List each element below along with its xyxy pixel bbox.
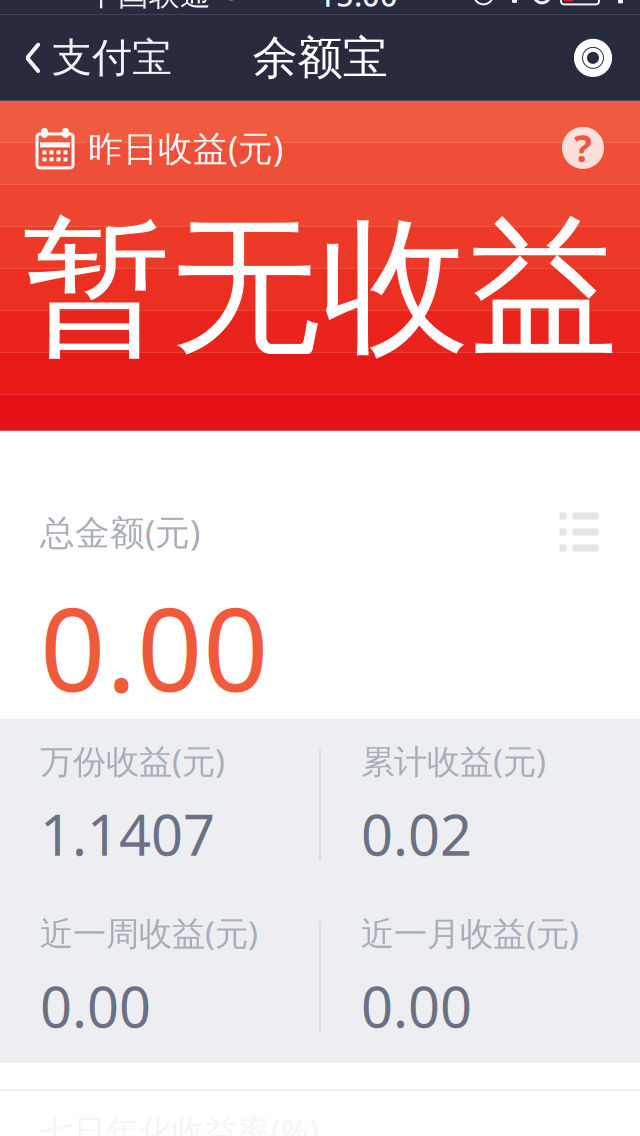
staticText: 0.02 xyxy=(361,797,472,871)
staticText: 昨日收益(元) xyxy=(88,125,283,171)
staticText: 0.00 xyxy=(361,969,472,1043)
staticText: 暂无收益 xyxy=(22,196,618,380)
button[interactable]: 帮助 xyxy=(560,125,606,171)
staticText: 近一月收益(元) xyxy=(361,911,579,955)
button[interactable]: 近一月收益(元) xyxy=(321,881,640,1073)
button[interactable]: 累计收益(元) xyxy=(321,709,640,901)
staticText: 0.00 xyxy=(40,969,151,1043)
staticText: ? xyxy=(574,123,592,173)
staticText: 总金额(元) xyxy=(40,509,200,555)
staticText: 万份收益(元) xyxy=(40,739,225,783)
staticText: 七日年化收益率(%) xyxy=(40,1109,319,1136)
staticText: 0.00 xyxy=(40,571,269,723)
button[interactable]: 设置 xyxy=(572,25,640,91)
staticText: 累计收益(元) xyxy=(361,739,546,783)
staticText: 1.1407 xyxy=(40,797,215,871)
button[interactable]: 万份收益(元) xyxy=(0,709,319,901)
staticText: 支付宝 xyxy=(52,33,172,82)
staticText: 15:00 xyxy=(318,0,398,15)
staticText: 中国联通 xyxy=(87,0,211,14)
button[interactable]: 总金额(元) xyxy=(0,431,640,719)
staticText: 近一周收益(元) xyxy=(40,911,258,955)
button[interactable]: 近一周收益(元) xyxy=(0,881,319,1073)
staticText: 余额宝 xyxy=(252,30,387,86)
button[interactable]: 支付宝 xyxy=(0,25,172,91)
